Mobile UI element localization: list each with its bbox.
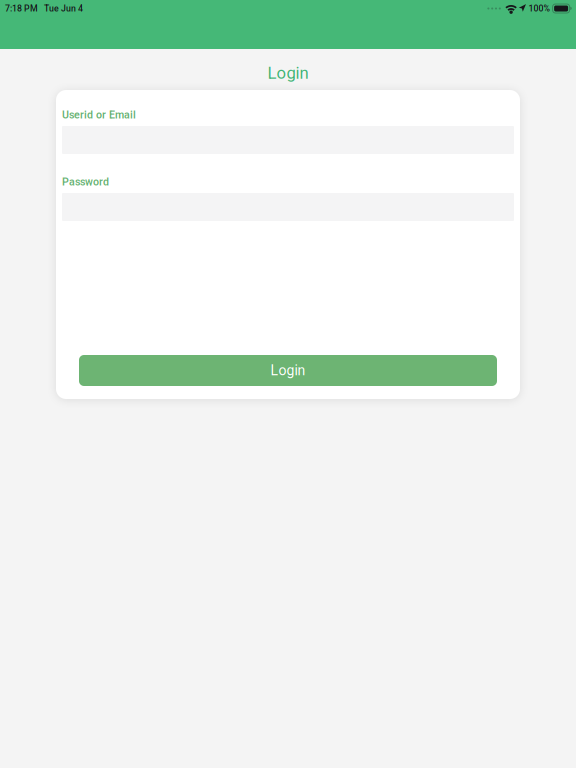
staticText: Tue Jun 4 [44,3,83,14]
staticText: Password [62,175,109,188]
staticText: Login [270,362,305,379]
staticText: Login [267,63,308,83]
staticText: 100% [529,3,550,14]
button[interactable]: Login [79,355,497,386]
staticText: 7:18 PM [5,3,38,14]
staticText: Userid or Email [62,108,136,121]
